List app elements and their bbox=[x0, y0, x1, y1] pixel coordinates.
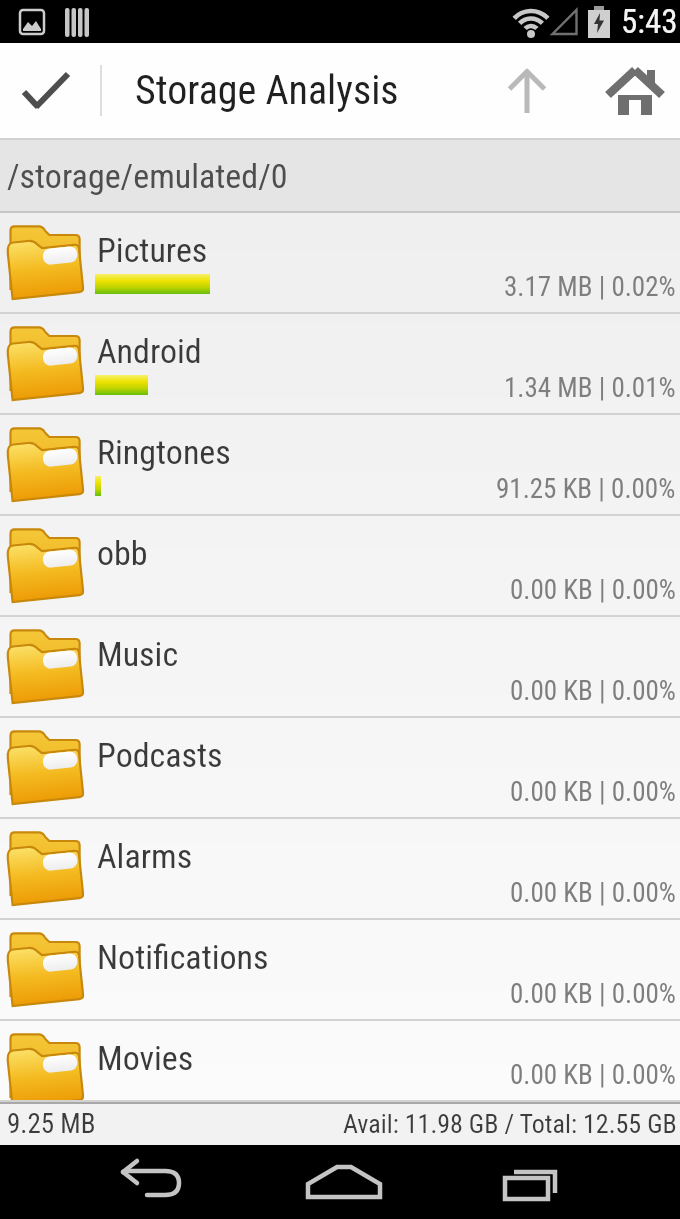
staticText: 0.00 KB | 0.00% bbox=[510, 978, 676, 1010]
button[interactable] bbox=[0, 43, 92, 138]
staticText: 0.00 KB | 0.00% bbox=[510, 675, 676, 707]
staticText: Ringtones bbox=[97, 432, 231, 472]
staticText: /storage/emulated/0 bbox=[7, 156, 288, 196]
button[interactable]: obb bbox=[0, 516, 680, 617]
staticText: Notifications bbox=[97, 937, 269, 977]
button[interactable]: Music bbox=[0, 617, 680, 718]
button[interactable]: Android bbox=[0, 314, 680, 415]
staticText: 1.34 MB | 0.01% bbox=[504, 372, 676, 404]
staticText: Storage Analysis bbox=[135, 67, 399, 114]
button[interactable]: Movies bbox=[0, 1021, 680, 1102]
button[interactable] bbox=[482, 43, 572, 138]
staticText: 0.00 KB | 0.00% bbox=[510, 574, 676, 606]
staticText: 0.00 KB | 0.00% bbox=[510, 776, 676, 808]
button[interactable] bbox=[274, 1145, 414, 1219]
staticText: 3.17 MB | 0.02% bbox=[504, 271, 676, 303]
button[interactable]: Ringtones bbox=[0, 415, 680, 516]
staticText: obb bbox=[97, 533, 148, 573]
button[interactable]: Notifications bbox=[0, 920, 680, 1021]
button[interactable] bbox=[590, 43, 680, 138]
button[interactable]: Alarms bbox=[0, 819, 680, 920]
staticText: 9.25 MB bbox=[7, 1108, 96, 1140]
staticText: Avail: 11.98 GB / Total: 12.55 GB bbox=[343, 1109, 677, 1139]
staticText: 91.25 KB | 0.00% bbox=[496, 473, 676, 505]
staticText: Music bbox=[97, 634, 179, 674]
staticText: Movies bbox=[97, 1038, 194, 1078]
staticText: 0.00 KB | 0.00% bbox=[510, 1059, 676, 1091]
button[interactable]: Pictures bbox=[0, 213, 680, 314]
staticText: Alarms bbox=[97, 836, 193, 876]
staticText: Android bbox=[97, 331, 202, 371]
staticText: 5:43 bbox=[621, 2, 678, 41]
button[interactable] bbox=[463, 1145, 603, 1219]
staticText: Podcasts bbox=[97, 735, 223, 775]
staticText: 0.00 KB | 0.00% bbox=[510, 877, 676, 909]
staticText: Pictures bbox=[97, 230, 208, 270]
button[interactable] bbox=[81, 1145, 221, 1219]
button[interactable]: Podcasts bbox=[0, 718, 680, 819]
